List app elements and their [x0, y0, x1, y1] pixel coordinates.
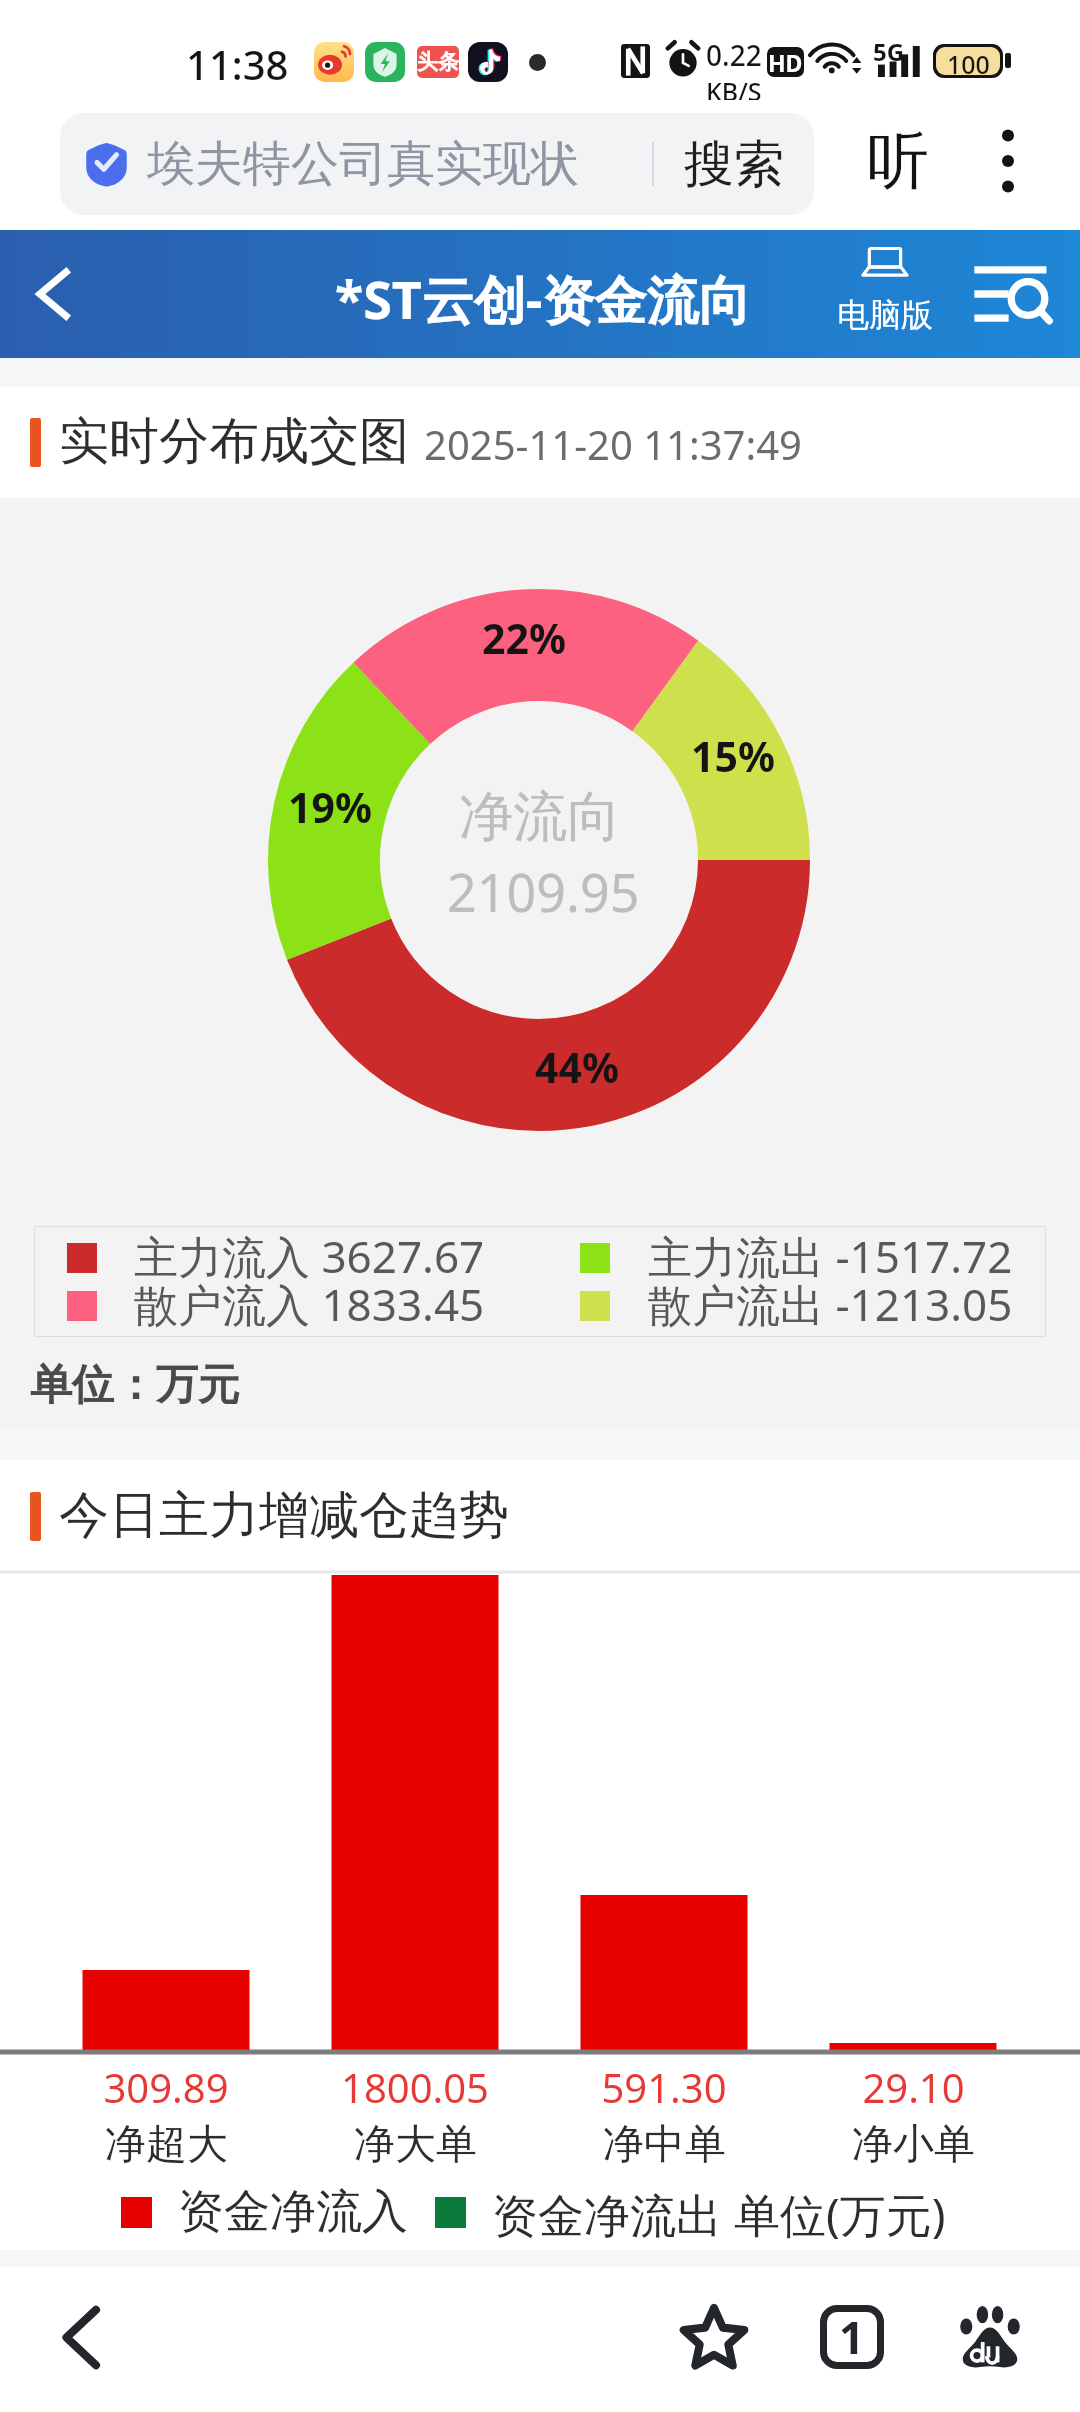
staticText: *ST云创-资金流向 — [335, 263, 751, 334]
staticText: 主力流入 3627.67 — [134, 1226, 485, 1286]
staticText: 单位：万元 — [30, 1359, 240, 1412]
button[interactable]: 电脑版 — [824, 238, 946, 350]
staticText: 11:38 — [186, 37, 289, 91]
staticText: 309.89 — [103, 2060, 229, 2114]
staticText: 净中单 — [603, 2119, 726, 2171]
staticText: 22% — [482, 610, 566, 666]
staticText: 主力流出 -1517.72 — [648, 1226, 1013, 1286]
button[interactable]: Tabs: 1 — [796, 2281, 908, 2393]
staticText: 591.30 — [601, 2060, 727, 2114]
staticText: 实时分布成交图 — [59, 410, 409, 473]
staticText: 2109.95 — [447, 856, 640, 927]
staticText: 头条 — [417, 49, 459, 75]
staticText: 净小单 — [852, 2119, 975, 2171]
staticText: 电脑版 — [837, 295, 933, 335]
button[interactable]: Favorite — [658, 2281, 770, 2393]
staticText: 散户流出 -1213.05 — [648, 1274, 1013, 1334]
button[interactable]: 听 Listen — [848, 111, 948, 211]
button[interactable]: Back — [24, 2281, 136, 2393]
staticText: 19% — [288, 779, 372, 835]
button[interactable]: Back — [4, 244, 100, 344]
staticText: 资金净流入 — [178, 2183, 408, 2241]
staticText: 1800.05 — [341, 2060, 489, 2114]
staticText: 44% — [535, 1039, 619, 1095]
staticText: 净大单 — [354, 2119, 477, 2171]
button[interactable]: Baidu home — [934, 2281, 1046, 2393]
staticText: 29.10 — [862, 2060, 965, 2114]
staticText: 0.22 — [706, 36, 762, 74]
staticText: 今日主力增减仓趋势 — [59, 1484, 509, 1547]
staticText: 听 — [867, 122, 929, 200]
button[interactable]: More options — [958, 111, 1058, 211]
staticText: 资金净流出 单位(万元) — [492, 2183, 946, 2246]
staticText: HD — [768, 47, 803, 77]
staticText: 搜索 — [684, 133, 784, 196]
staticText: 埃夫特公司真实现状 — [147, 134, 579, 194]
staticText: 15% — [691, 728, 775, 784]
button[interactable]: 埃夫特公司真实现状 — [60, 113, 814, 215]
staticText: 1 — [839, 2307, 865, 2367]
staticText: 净超大 — [105, 2119, 228, 2171]
staticText: 5G — [873, 35, 905, 68]
staticText: 净流向 — [459, 783, 621, 851]
staticText: 100 — [947, 47, 990, 75]
button[interactable]: Search menu — [958, 242, 1070, 346]
staticText: 2025-11-20 11:37:49 — [424, 417, 802, 471]
staticText: 散户流入 1833.45 — [134, 1274, 485, 1334]
staticText: KB/S — [706, 74, 762, 108]
